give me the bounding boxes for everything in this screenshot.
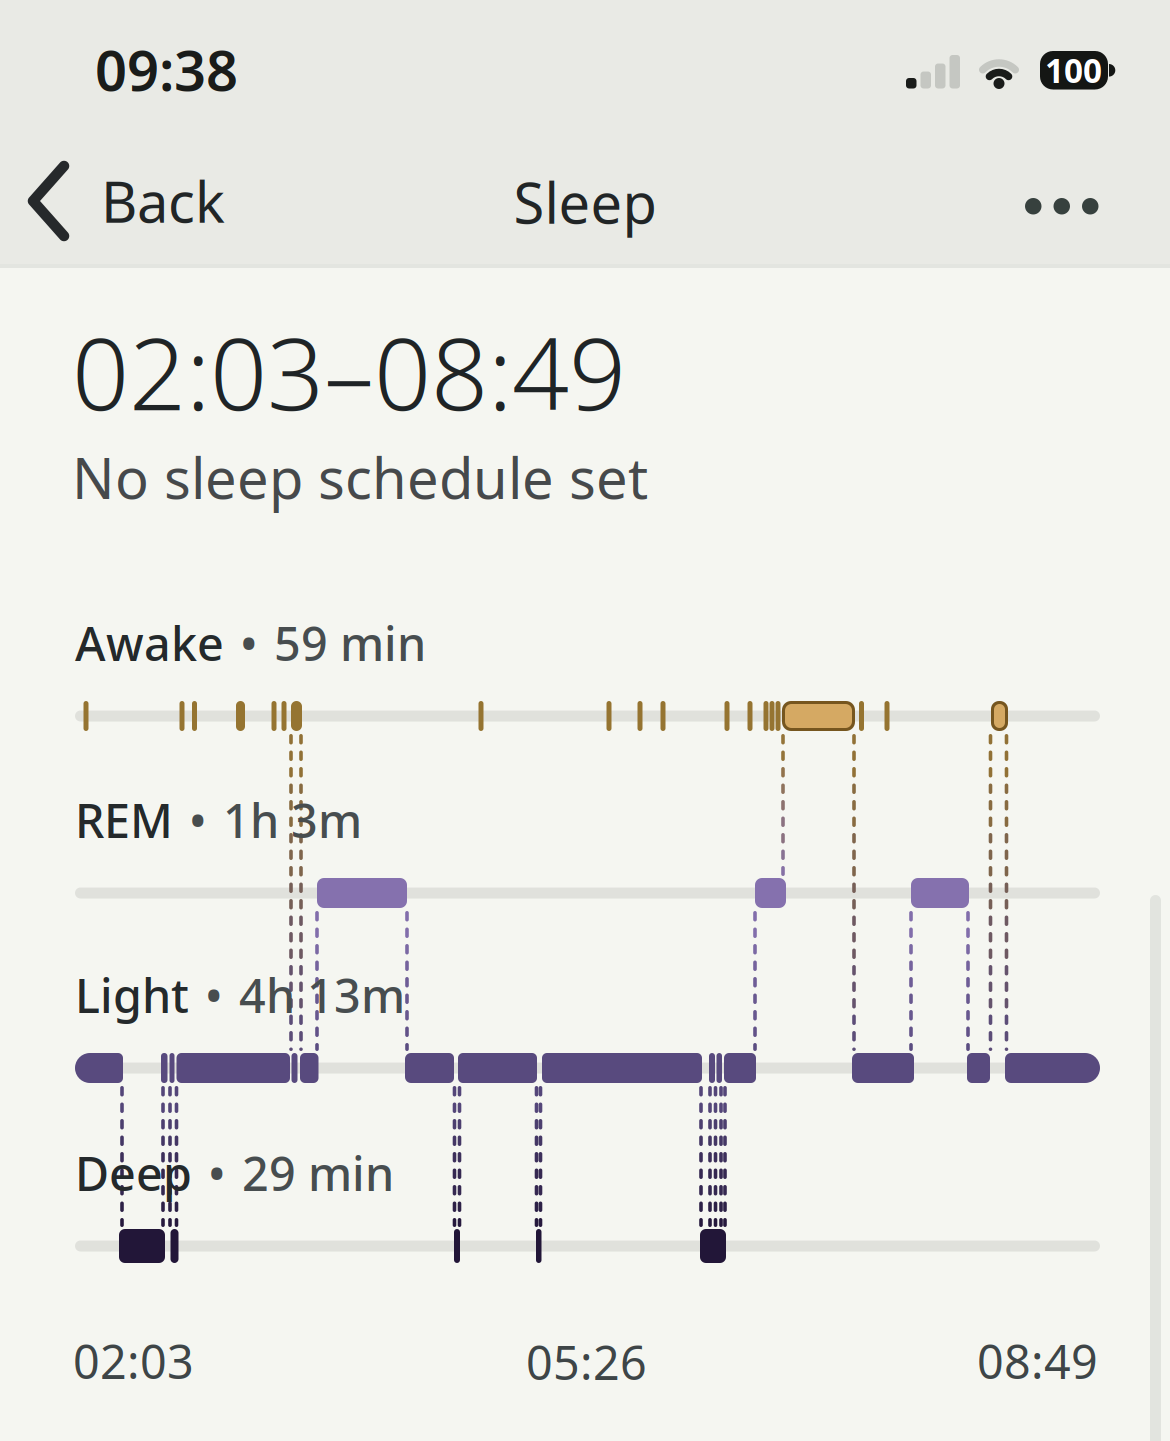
staticText: Awake (75, 612, 224, 674)
staticText: 1h 3m (223, 789, 362, 851)
staticText: REM (75, 789, 173, 851)
staticText: • (240, 612, 258, 674)
staticText: • (205, 964, 223, 1026)
staticText: 08:49 (977, 1330, 1098, 1392)
staticText: 59 min (274, 612, 426, 674)
staticText: Back (101, 164, 225, 238)
staticText: 4h 13m (239, 964, 405, 1026)
staticText: 09:38 (95, 32, 238, 106)
staticText: No sleep schedule set (72, 440, 648, 514)
staticText: • (189, 789, 207, 851)
staticText: 100 (1045, 48, 1102, 92)
staticText: Deep (75, 1142, 192, 1204)
staticText: • (208, 1142, 226, 1204)
staticText: Light (75, 964, 189, 1026)
button[interactable]: Back (27, 160, 225, 242)
staticText: 29 min (242, 1142, 394, 1204)
staticText: Sleep (513, 165, 656, 239)
staticText: 05:26 (526, 1331, 647, 1393)
staticText: 02:03 (73, 1330, 194, 1392)
button[interactable]: More options (1025, 198, 1098, 214)
staticText: 02:03–08:49 (72, 305, 626, 438)
